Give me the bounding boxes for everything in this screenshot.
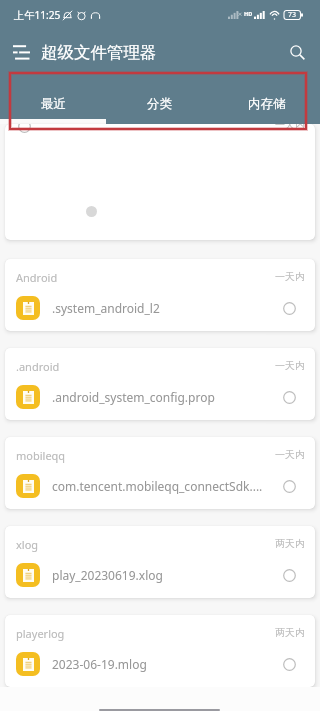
staticText: .android [16,359,60,374]
button[interactable]: Search [282,37,312,67]
button[interactable]: playerlog [5,615,315,687]
staticText: playerlog [16,626,65,641]
staticText: HD [244,10,253,17]
staticText: com.tencent.mobileqq_connectSdk.... [52,478,277,494]
staticText: 内存储 [248,96,286,112]
staticText: 两天内 [275,537,305,550]
staticText: 超级文件管理器 [41,42,157,63]
staticText: xlog [16,537,39,552]
staticText: 一天内 [275,359,305,372]
staticText: 一天内 [275,448,305,461]
staticText: 最近 [41,96,66,112]
staticText: play_20230619.xlog [52,567,277,583]
staticText: 2023-06-19.mlog [52,656,277,672]
staticText: 上午11:25 [14,8,61,22]
button[interactable]: mobileqq [5,437,315,509]
button[interactable]: 分类 [106,74,213,124]
button[interactable]: 最近 [0,74,106,124]
button[interactable]: xlog [5,526,315,598]
staticText: .android_system_config.prop [52,389,277,405]
button[interactable]: Android [5,259,315,331]
staticText: mobileqq [16,448,66,463]
button[interactable]: 内存储 [213,74,320,124]
staticText: .system_android_l2 [52,300,277,316]
button[interactable]: Menu [5,36,37,68]
staticText: 两天内 [275,626,305,639]
staticText: 一天内 [275,270,305,283]
staticText: Android [16,270,58,285]
staticText: 分类 [147,96,172,112]
button[interactable]: .android [5,348,315,420]
staticText: 73 [288,10,297,20]
staticText: 一天内 [275,124,305,131]
